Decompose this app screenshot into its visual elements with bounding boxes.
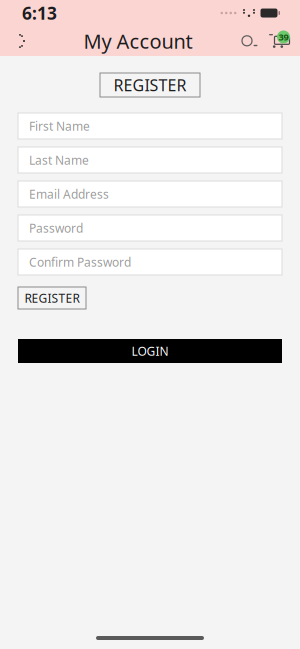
staticText: Email Address [29,186,109,202]
button[interactable]: Email Address [18,181,282,207]
button[interactable]: Confirm Password [18,249,282,275]
staticText: My Account [83,28,192,54]
button[interactable]: LOGIN [18,339,282,363]
staticText: 39 [278,31,288,43]
staticText: REGISTER [24,290,79,306]
staticText: Confirm Password [29,254,131,270]
staticText: 6:13 [22,1,57,24]
button[interactable]: Password [18,215,282,241]
staticText: LOGIN [131,343,168,359]
staticText: Password [29,220,83,236]
button[interactable]: REGISTER [100,73,200,97]
button[interactable]: First Name [18,113,282,139]
staticText: First Name [29,118,90,134]
button[interactable]: Cart, 39 items [264,26,292,56]
button[interactable]: Back [6,26,38,56]
staticText: Last Name [29,152,89,168]
button[interactable]: Last Name [18,147,282,173]
button[interactable]: REGISTER [18,287,86,309]
staticText: REGISTER [113,74,186,96]
button[interactable]: Search [238,26,264,56]
